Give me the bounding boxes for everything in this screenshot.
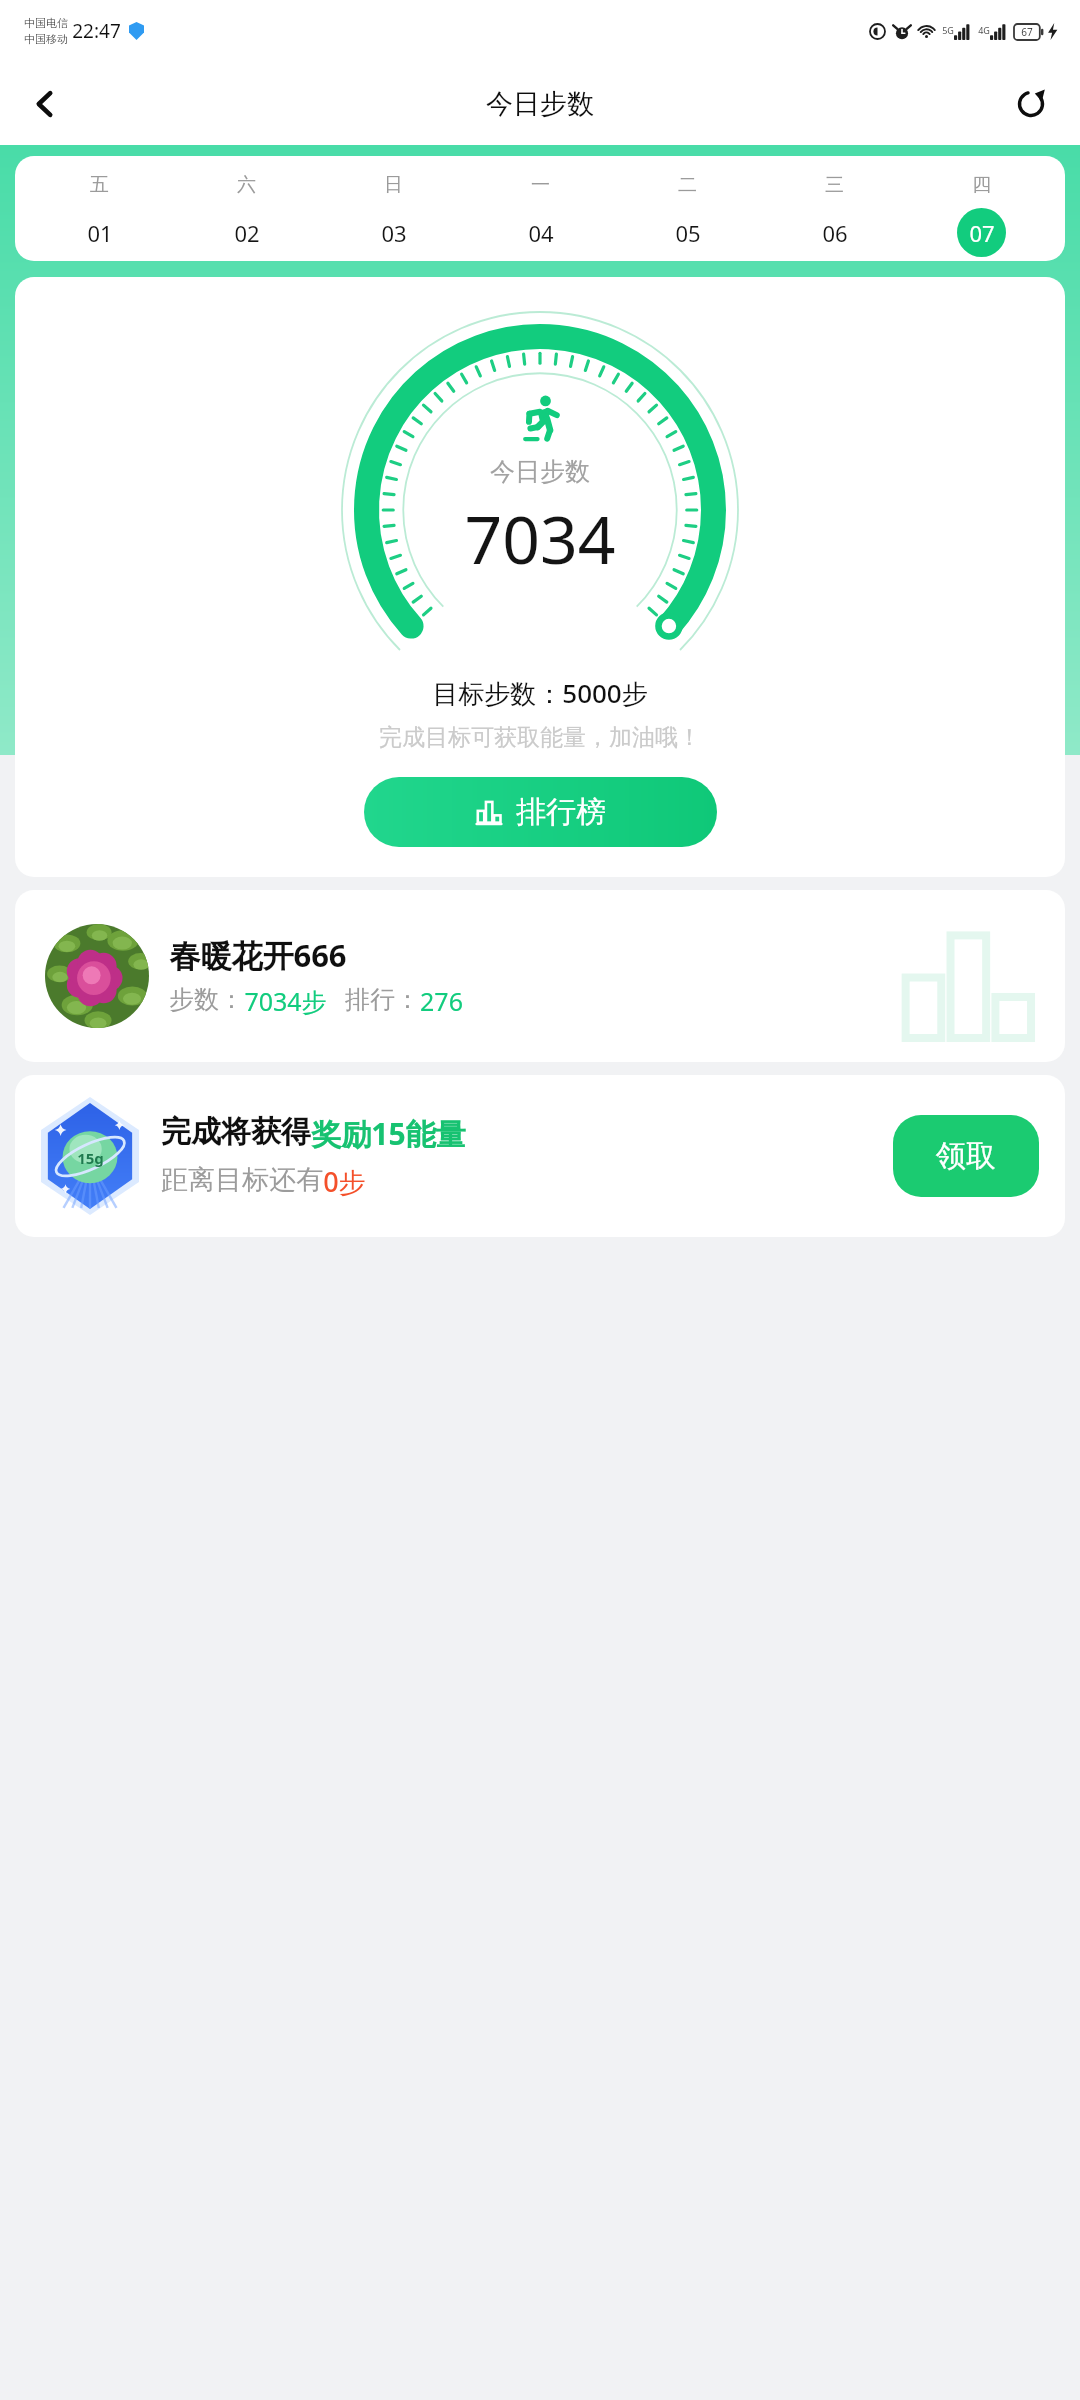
staticText: 目标步数：5000步 <box>432 675 648 711</box>
staticText: 步数： <box>169 984 244 1015</box>
button[interactable]: 01 <box>75 208 124 257</box>
staticText: 中国电信 <box>24 16 68 30</box>
staticText: 67 <box>1021 25 1033 39</box>
staticText: 二 <box>678 173 697 197</box>
staticText: 六 <box>237 173 256 197</box>
button[interactable]: 07 <box>957 208 1006 257</box>
staticText: 距离目标还有 <box>161 1163 323 1197</box>
staticText: 领取 <box>936 1137 996 1175</box>
staticText: 四 <box>972 173 991 197</box>
staticText: 0步 <box>323 1163 366 1200</box>
staticText: 奖励15能量 <box>311 1113 466 1154</box>
staticText: 03 <box>381 218 407 248</box>
staticText: 今日步数 <box>490 456 590 487</box>
staticText: 7034 <box>464 493 616 583</box>
staticText: 276 <box>420 984 463 1018</box>
staticText: 日 <box>384 173 403 197</box>
staticText: 排行榜 <box>516 793 606 831</box>
button[interactable]: 05 <box>663 208 712 257</box>
button[interactable]: 02 <box>222 208 271 257</box>
staticText: 7034步 <box>244 984 327 1018</box>
staticText: 完成将获得 <box>161 1113 311 1151</box>
button[interactable]: 04 <box>516 208 565 257</box>
staticText: 5G <box>942 24 954 36</box>
staticText: 一 <box>531 173 550 197</box>
staticText: 06 <box>822 218 848 248</box>
button[interactable]: 03 <box>369 208 418 257</box>
staticText: 07 <box>969 218 995 248</box>
staticText: 15g <box>77 1148 104 1168</box>
button[interactable]: 领取 <box>893 1115 1039 1197</box>
staticText: 04 <box>528 218 554 248</box>
staticText: 排行： <box>345 984 420 1015</box>
staticText: 春暖花开666 <box>169 934 347 976</box>
staticText: 22:47 <box>72 18 121 44</box>
button[interactable]: Back <box>14 73 76 135</box>
staticText: 02 <box>234 218 260 248</box>
staticText: 05 <box>675 218 701 248</box>
staticText: 01 <box>87 218 113 248</box>
staticText: 中国移动 <box>24 32 68 46</box>
staticText: 今日步数 <box>486 87 594 121</box>
staticText: 三 <box>825 173 844 197</box>
button[interactable]: 排行榜 <box>364 777 717 847</box>
staticText: 五 <box>90 173 109 197</box>
button[interactable]: Refresh <box>1000 73 1062 135</box>
staticText: 完成目标可获取能量，加油哦！ <box>379 723 701 752</box>
button[interactable]: 春暖花开666 <box>15 890 1065 1062</box>
button[interactable]: 06 <box>810 208 859 257</box>
staticText: 4G <box>978 24 990 36</box>
